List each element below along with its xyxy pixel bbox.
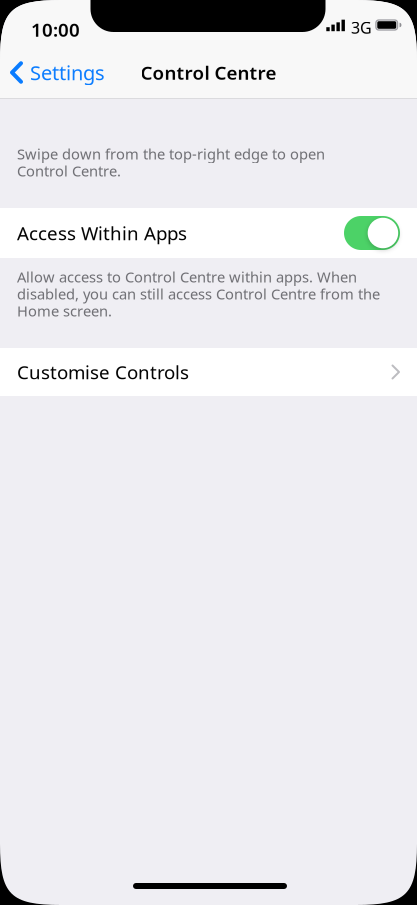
button[interactable]: Settings bbox=[0, 46, 115, 99]
staticText: Control Centre bbox=[140, 60, 276, 85]
staticText: Access Within Apps bbox=[17, 221, 187, 245]
staticText: 3G bbox=[351, 17, 372, 38]
staticText: Customise Controls bbox=[17, 360, 189, 384]
staticText: Swipe down from the top-right edge to op… bbox=[17, 144, 325, 181]
staticText: Allow access to Control Centre within ap… bbox=[17, 267, 380, 321]
button[interactable]: Access Within Apps bbox=[0, 208, 417, 258]
staticText: Settings bbox=[30, 59, 105, 86]
button[interactable]: Customise Controls bbox=[0, 348, 417, 396]
staticText: 10:00 bbox=[31, 17, 80, 42]
